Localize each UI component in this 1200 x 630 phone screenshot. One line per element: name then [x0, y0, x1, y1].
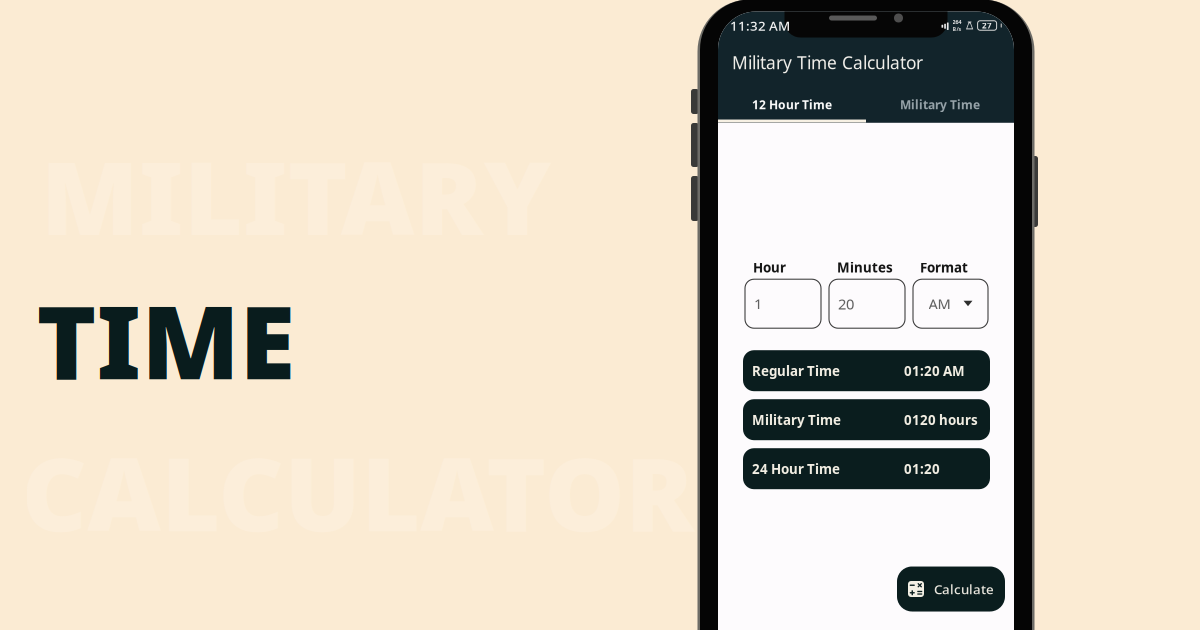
- staticText: CALCULATOR: [21, 425, 694, 559]
- staticText: 27: [982, 20, 992, 31]
- staticText: Military Time: [752, 411, 841, 429]
- staticText: B/s: [953, 25, 962, 33]
- staticText: Hour: [753, 258, 786, 276]
- staticText: Military Time: [900, 97, 980, 112]
- staticText: Military Time Calculator: [732, 51, 923, 74]
- staticText: TIME: [36, 273, 295, 407]
- button[interactable]: 1: [745, 279, 821, 328]
- staticText: 1: [754, 294, 762, 313]
- staticText: 01:20 AM: [904, 362, 965, 380]
- staticText: 0120 hours: [904, 411, 978, 429]
- staticText: 12 Hour Time: [752, 97, 832, 112]
- staticText: 24 Hour Time: [752, 460, 840, 478]
- button[interactable]: 20: [829, 279, 905, 328]
- staticText: Minutes: [837, 258, 893, 276]
- button[interactable]: AM: [913, 279, 988, 328]
- button[interactable]: Military Time: [866, 94, 1014, 122]
- staticText: 20: [838, 294, 854, 313]
- staticText: MILITARY: [41, 129, 551, 263]
- staticText: 11:32 AM: [730, 17, 790, 34]
- button[interactable]: Calculate: [897, 566, 1005, 611]
- button[interactable]: Regular Time: [743, 350, 990, 391]
- button[interactable]: Military Time: [743, 399, 990, 440]
- staticText: 264: [953, 18, 962, 25]
- button[interactable]: 12 Hour Time: [718, 94, 866, 122]
- staticText: Format: [920, 258, 968, 276]
- staticText: AM: [928, 294, 950, 313]
- staticText: Regular Time: [752, 362, 840, 380]
- staticText: Calculate: [934, 580, 994, 598]
- staticText: 01:20: [904, 460, 940, 478]
- button[interactable]: 24 Hour Time: [743, 448, 990, 489]
